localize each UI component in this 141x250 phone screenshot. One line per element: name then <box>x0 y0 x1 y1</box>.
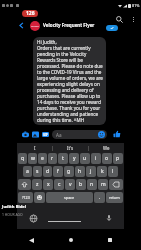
button[interactable]: f <box>53 166 63 177</box>
staticText: . <box>99 194 101 201</box>
staticText: 81% <box>132 3 140 8</box>
staticText: It's <box>67 145 74 151</box>
button[interactable]: w <box>28 153 37 164</box>
staticText: o <box>105 155 109 162</box>
staticText: h <box>78 168 82 175</box>
staticText: g <box>67 168 71 175</box>
staticText: b <box>79 181 83 188</box>
staticText: Hi Judith, Orders that are currently pen… <box>37 39 103 123</box>
button[interactable]: Shift <box>18 179 31 190</box>
staticText: a <box>26 168 29 175</box>
button[interactable]: Search <box>113 13 126 26</box>
button[interactable]: h <box>75 166 85 177</box>
button[interactable]: c <box>54 179 64 190</box>
staticText: We <box>103 145 110 151</box>
staticText: f <box>57 168 59 175</box>
staticText: t <box>62 155 64 162</box>
staticText: space <box>64 195 75 200</box>
button[interactable]: g <box>64 166 74 177</box>
button[interactable]: s <box>33 166 42 177</box>
staticText: w <box>31 155 35 162</box>
button[interactable]: d <box>43 166 52 177</box>
button[interactable]: return <box>106 192 123 203</box>
button[interactable]: Aa <box>52 130 107 139</box>
staticText: I <box>34 145 36 151</box>
button[interactable]: Hi Judith, Orders that are currently pen… <box>33 37 106 125</box>
button[interactable]: u <box>80 153 90 164</box>
button[interactable]: I <box>17 143 52 153</box>
staticText: y <box>73 155 76 162</box>
button[interactable]: Home <box>63 232 79 248</box>
staticText: p <box>116 155 120 162</box>
button[interactable]: y <box>69 153 79 164</box>
button[interactable]: b <box>76 179 86 190</box>
button[interactable]: r <box>48 153 57 164</box>
staticText: l <box>112 168 114 175</box>
staticText: 1 HOUR AGO <box>2 212 23 217</box>
button[interactable]: Emoji <box>34 192 45 203</box>
button[interactable]: t <box>58 153 68 164</box>
button[interactable]: Backspace <box>109 179 123 190</box>
button[interactable]: n <box>87 179 97 190</box>
staticText: s <box>36 168 39 175</box>
staticText: GIF <box>43 133 48 137</box>
button[interactable]: Profile photo <box>30 21 40 31</box>
button[interactable]: Back <box>15 19 28 32</box>
staticText: z <box>36 181 39 188</box>
button[interactable]: l <box>108 166 118 177</box>
staticText: x <box>47 181 50 188</box>
button[interactable]: Gallery <box>30 126 40 142</box>
button[interactable]: x <box>43 179 53 190</box>
staticText: u <box>83 155 87 162</box>
staticText: Judith Bidel <box>2 204 27 210</box>
button[interactable]: space <box>46 192 93 203</box>
button[interactable]: z <box>32 179 42 190</box>
button[interactable]: a <box>23 166 32 177</box>
button[interactable]: . <box>94 192 105 203</box>
button[interactable]: v <box>65 179 75 190</box>
staticText: k <box>101 168 104 175</box>
button[interactable]: q <box>18 153 27 164</box>
button[interactable]: We <box>89 143 124 153</box>
button[interactable]: Velocity Frequent Flyer <box>43 22 95 28</box>
staticText: i <box>95 155 97 162</box>
button[interactable]: e <box>38 153 47 164</box>
staticText: n <box>90 181 94 188</box>
staticText: e <box>41 155 44 162</box>
staticText: c <box>58 181 61 188</box>
button[interactable]: GIF <box>40 126 50 142</box>
staticText: ?123 <box>22 195 30 200</box>
staticText: d <box>46 168 50 175</box>
button[interactable]: i <box>91 153 101 164</box>
staticText: velocity <box>31 25 39 28</box>
button[interactable]: Like <box>110 126 124 142</box>
button[interactable]: It's <box>53 143 88 153</box>
button[interactable]: k <box>97 166 107 177</box>
button[interactable]: Recents <box>102 232 118 248</box>
button[interactable]: j <box>86 166 96 177</box>
staticText: return <box>109 195 120 200</box>
staticText: m <box>101 181 106 188</box>
button[interactable]: p <box>113 153 123 164</box>
staticText: j <box>90 168 92 175</box>
staticText: 126 <box>26 10 35 17</box>
button[interactable]: Camera <box>20 126 30 142</box>
button[interactable]: m <box>98 179 108 190</box>
button[interactable]: More options <box>127 13 139 25</box>
button[interactable]: o <box>102 153 112 164</box>
button[interactable]: Back <box>23 232 39 248</box>
staticText: v <box>69 181 72 188</box>
button[interactable]: ?123 <box>18 192 33 203</box>
staticText: Aa <box>56 132 62 138</box>
staticText: q <box>21 155 25 162</box>
staticText: r <box>51 155 54 162</box>
